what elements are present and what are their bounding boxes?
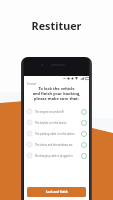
button[interactable]: The keyfob is in the device [26,117,87,128]
staticText: The parking cable is in the device [35,132,79,135]
button[interactable]: Fermer [26,82,38,86]
other: Status icons [63,77,88,80]
button[interactable]: Lock and finish [27,187,86,197]
button[interactable]: The parking cable is in the device [26,128,87,139]
staticText: Restituer [0,18,113,33]
button[interactable]: No charging cable is plugged in [26,150,87,161]
staticText: The doors and the windows are closed [35,143,79,146]
staticText: Lock and finish [46,190,68,194]
button[interactable]: The doors and the windows are closed [26,139,87,150]
staticText: To lock the vehicle and finish your book… [28,86,85,101]
staticText: The engine is turned off [35,110,79,113]
button[interactable]: The engine is turned off [26,106,87,117]
staticText: The keyfob is in the device [35,121,79,124]
staticText: Fermer [27,82,37,86]
staticText: No charging cable is plugged in [35,154,79,157]
